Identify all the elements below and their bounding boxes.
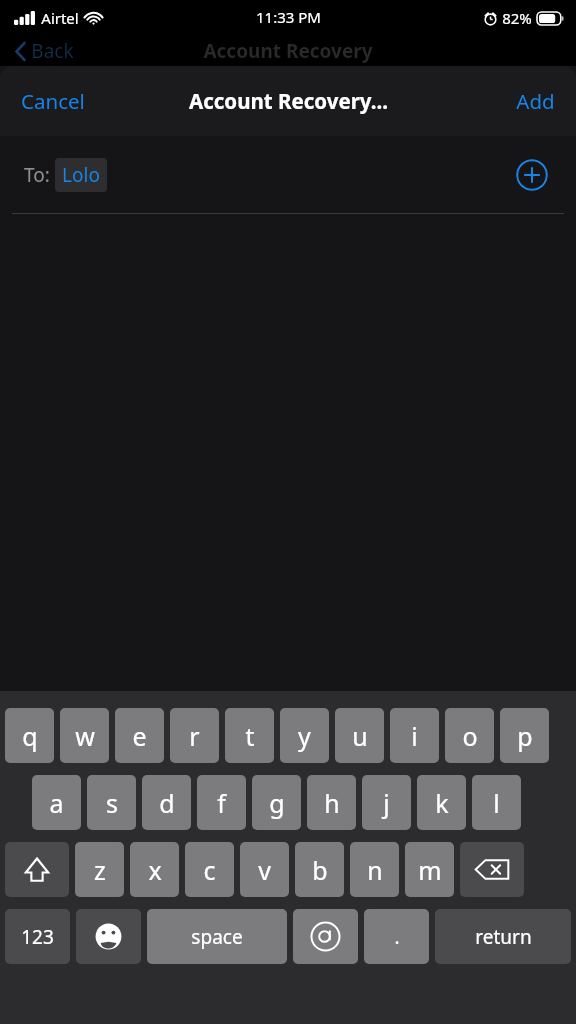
staticText: e [132,719,147,753]
staticText: a [49,786,64,820]
staticText: r [189,719,200,753]
button[interactable]: w [60,708,109,763]
staticText: w [75,719,95,753]
button[interactable]: m [405,842,454,897]
staticText: l [493,786,500,820]
staticText: 11:33 PM [256,7,321,27]
button[interactable]: f [197,775,246,830]
staticText: b [312,853,328,887]
button[interactable]: e [115,708,164,763]
button[interactable]: z [75,842,124,897]
staticText: To: [24,162,50,188]
staticText: t [245,719,255,753]
button[interactable]: Cancel [8,79,98,123]
button[interactable]: h [307,775,356,830]
button[interactable]: u [335,708,384,763]
button[interactable]: s [87,775,136,830]
staticText: f [217,786,226,820]
staticText: Lolo [62,162,100,188]
button[interactable]: n [350,842,399,897]
staticText: 82% [502,8,532,28]
button[interactable]: b [295,842,344,897]
staticText: j [383,786,390,820]
button[interactable]: Shift [5,842,69,897]
button[interactable]: y [280,708,329,763]
button[interactable]: v [240,842,289,897]
staticText: s [106,786,118,820]
button[interactable]: a [32,775,81,830]
button[interactable]: q [5,708,54,763]
staticText: i [411,719,418,753]
staticText: Back [31,38,74,64]
staticText: o [462,719,478,753]
button[interactable]: l [472,775,521,830]
staticText: d [159,786,175,820]
button[interactable]: x [130,842,179,897]
staticText: return [475,924,532,950]
button[interactable]: i [390,708,439,763]
staticText: m [418,853,442,887]
button[interactable]: space [147,909,287,964]
button[interactable]: p [500,708,549,763]
button[interactable]: 123 [5,909,70,964]
button[interactable]: o [445,708,494,763]
button[interactable]: Backspace [460,842,524,897]
button[interactable]: Lolo [55,158,107,192]
staticText: Account Recovery [203,38,373,64]
staticText: Airtel [41,8,79,28]
staticText: Add [516,87,555,115]
button[interactable]: Add [503,79,568,123]
button[interactable]: return [435,909,571,964]
staticText: Cancel [21,87,85,115]
staticText: space [191,924,243,950]
button[interactable]: t [225,708,274,763]
staticText: y [298,719,311,753]
button[interactable]: g [252,775,301,830]
button[interactable]: j [362,775,411,830]
button[interactable]: Add contact [516,159,548,191]
staticText: Account Recovery... [189,87,388,115]
staticText: u [352,719,368,753]
staticText: x [148,853,162,887]
staticText: z [94,853,106,887]
button[interactable]: . [364,909,429,964]
staticText: v [258,853,271,887]
staticText: q [22,719,38,753]
button[interactable]: Emoji [76,909,141,964]
button[interactable]: k [417,775,466,830]
staticText: h [324,786,340,820]
staticText: p [517,719,533,753]
staticText: . [394,924,400,950]
button[interactable]: r [170,708,219,763]
button[interactable]: d [142,775,191,830]
staticText: k [435,786,449,820]
staticText: c [203,853,216,887]
staticText: 123 [21,924,54,950]
staticText: n [367,853,383,887]
staticText: g [269,786,285,820]
button[interactable]: At sign [293,909,358,964]
button[interactable]: c [185,842,234,897]
